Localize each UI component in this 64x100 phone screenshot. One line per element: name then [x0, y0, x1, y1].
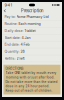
staticText: Routine: [4, 22, 17, 26]
staticText: Refills: [4, 56, 15, 61]
staticText: Acme Pharmacy Ltd [16, 15, 48, 19]
button[interactable]: Daily dose: [2, 27, 62, 34]
staticText: 4 Feb [20, 42, 29, 47]
button[interactable]: Pay to: [2, 13, 62, 20]
staticText: 2 left [16, 56, 24, 61]
button[interactable]: Routine: [2, 20, 62, 27]
staticText: Take ONE tablet by mouth every [5, 71, 56, 75]
button[interactable]: Back [3, 8, 7, 13]
staticText: dose in any 24 hour period. [5, 84, 49, 88]
button[interactable]: Quantity: [2, 48, 62, 55]
button[interactable]: Refills: [2, 55, 62, 62]
staticText: DIRECTIONS [5, 67, 23, 70]
staticText: 28 [20, 49, 24, 54]
staticText: Pay to: [4, 15, 15, 19]
staticText: 4 Jan [21, 36, 30, 40]
staticText: Keep out of reach of children. [5, 89, 52, 92]
staticText: 9:41 [4, 3, 12, 7]
staticText: Daily dose: [4, 29, 23, 33]
staticText: Start date: [4, 36, 20, 40]
staticText: Prescription [21, 8, 43, 13]
staticText: Each morning [18, 22, 40, 26]
staticText: End date: [4, 42, 19, 47]
staticText: morning with or just after food. [5, 75, 54, 79]
button[interactable]: Start date: [2, 34, 62, 41]
staticText: Quantity: [4, 49, 19, 54]
button[interactable]: End date: [2, 41, 62, 48]
staticText: 1 tablet [24, 29, 35, 33]
staticText: Do not take more than the stated [5, 80, 57, 84]
